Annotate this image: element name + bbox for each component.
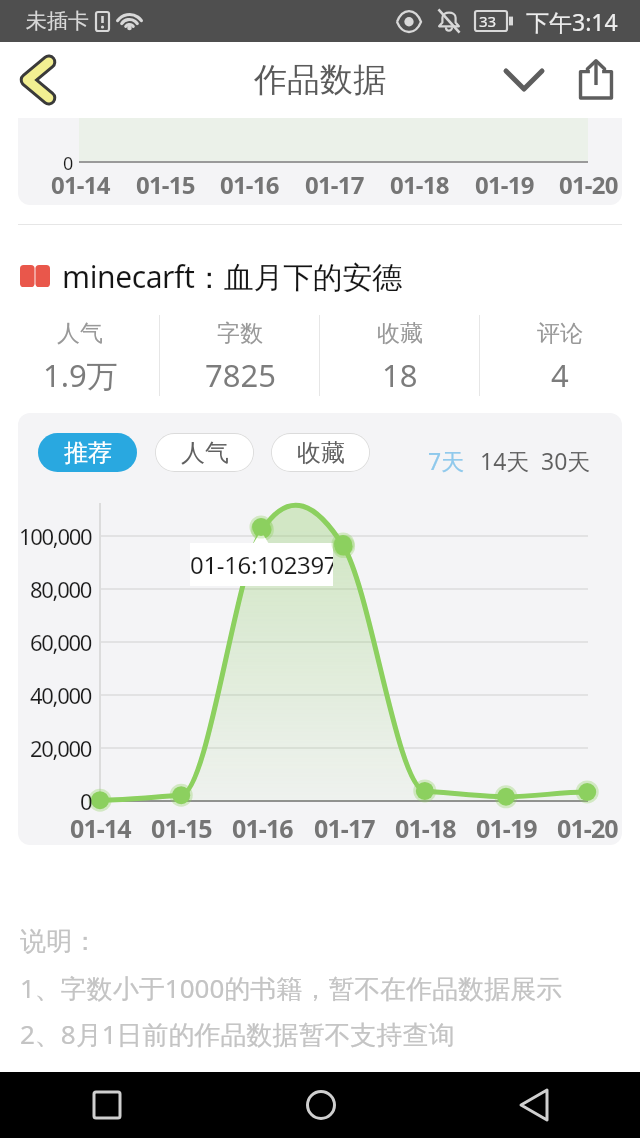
staticText: 01-18 — [390, 168, 449, 201]
button[interactable]: 14天 — [472, 440, 538, 481]
staticText: 0 — [63, 151, 74, 176]
button[interactable]: Back — [427, 1072, 640, 1138]
button[interactable]: 评论 — [480, 308, 640, 403]
button[interactable]: 收藏 — [271, 433, 370, 472]
staticText: 1.9万 — [43, 354, 118, 396]
staticText: 01-16:102397 — [190, 548, 333, 581]
staticText: 01-20 — [557, 811, 618, 845]
staticText: 推荐 — [64, 438, 112, 468]
staticText: 01-19 — [475, 168, 534, 201]
staticText: 01-14 — [70, 811, 131, 845]
button[interactable]: 字数 — [160, 308, 320, 403]
staticText: 40,000 — [30, 680, 92, 710]
staticText: 作品数据 — [254, 59, 386, 101]
staticText: 评论 — [537, 319, 583, 348]
staticText: 7825 — [205, 354, 276, 396]
staticText: 01-17 — [305, 168, 364, 201]
staticText: 未插卡 — [26, 8, 89, 34]
staticText: 01-15 — [151, 811, 212, 845]
staticText: 18 — [382, 354, 418, 396]
button[interactable]: 人气 — [0, 308, 160, 403]
staticText: 100,000 — [19, 521, 92, 551]
staticText: 20,000 — [30, 733, 92, 763]
staticText: 01-14 — [51, 168, 110, 201]
staticText: 30天 — [541, 445, 591, 476]
staticText: 01-16 — [232, 811, 293, 845]
staticText: 01-19 — [476, 811, 537, 845]
staticText: 01-20 — [559, 168, 618, 201]
staticText: 人气 — [57, 319, 103, 348]
button[interactable]: 人气 — [155, 433, 254, 472]
staticText: 7天 — [428, 445, 465, 476]
staticText: 收藏 — [377, 319, 423, 348]
staticText: 01-17 — [314, 811, 375, 845]
button[interactable]: 7天 — [420, 440, 473, 481]
staticText: 下午3:14 — [526, 6, 618, 37]
staticText: minecarft：血月下的安德 — [62, 256, 402, 297]
button[interactable]: Recents — [0, 1072, 214, 1138]
staticText: 4 — [551, 354, 569, 396]
staticText: 1、字数小于1000的书籍，暂不在作品数据展示 — [20, 970, 563, 1006]
button[interactable]: minecarft：血月下的安德 — [0, 248, 640, 304]
button[interactable]: 30天 — [533, 440, 599, 481]
staticText: 01-15 — [136, 168, 195, 201]
staticText: 字数 — [217, 319, 263, 348]
button[interactable]: 收藏 — [320, 308, 480, 403]
staticText: 14天 — [480, 445, 530, 476]
button[interactable]: Back — [0, 42, 76, 118]
staticText: 2、8月1日前的作品数据暂不支持查询 — [20, 1016, 455, 1052]
staticText: 33 — [479, 11, 497, 31]
button[interactable]: Expand — [488, 44, 560, 116]
staticText: 说明： — [20, 925, 98, 958]
staticText: 收藏 — [297, 438, 345, 468]
staticText: 人气 — [181, 438, 229, 468]
staticText: 0 — [80, 786, 92, 816]
staticText: 80,000 — [30, 574, 92, 604]
button[interactable]: 推荐 — [38, 433, 137, 472]
staticText: 01-18 — [395, 811, 456, 845]
staticText: 60,000 — [30, 627, 92, 657]
button[interactable]: Home — [214, 1072, 427, 1138]
staticText: 01-16 — [220, 168, 279, 201]
button[interactable]: Share — [560, 44, 632, 116]
